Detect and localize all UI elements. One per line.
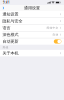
staticText: 其他 bbox=[3, 46, 9, 49]
staticText: 关于本机 bbox=[3, 51, 19, 56]
staticText: 语言 bbox=[3, 25, 11, 30]
staticText: 9:41 bbox=[3, 1, 10, 4]
staticText: 通知设置 bbox=[3, 12, 19, 17]
staticText: 深色模式 bbox=[3, 32, 19, 37]
button[interactable]: 语言 bbox=[0, 25, 64, 31]
button[interactable]: 自动更新 bbox=[0, 38, 64, 45]
button[interactable]: 关于本机 bbox=[0, 50, 64, 56]
button[interactable]: 通知设置 bbox=[0, 11, 64, 17]
staticText: 通用设置 bbox=[24, 5, 40, 10]
button[interactable]: 深色模式 bbox=[0, 31, 64, 38]
staticText: 简体中文 bbox=[47, 26, 59, 29]
staticText: 自动 bbox=[53, 33, 59, 36]
button[interactable]: 隐私与安全 bbox=[0, 18, 64, 24]
staticText: 自动更新 bbox=[3, 39, 19, 44]
button[interactable]: Back bbox=[0, 5, 11, 11]
staticText: 隐私与安全 bbox=[3, 19, 23, 23]
